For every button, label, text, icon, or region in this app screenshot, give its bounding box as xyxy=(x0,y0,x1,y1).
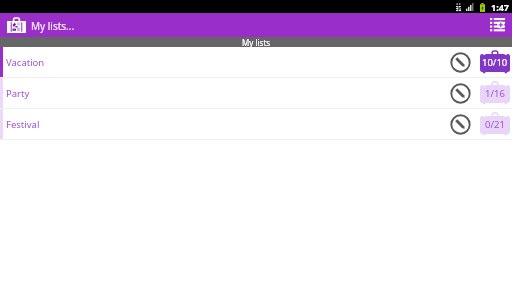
staticText: Vacation xyxy=(6,56,45,69)
button[interactable]: Festival xyxy=(0,109,512,139)
staticText: 1:47 xyxy=(491,1,509,13)
button[interactable]: Add list xyxy=(482,13,512,37)
staticText: Party xyxy=(6,87,30,100)
staticText: 0/21 xyxy=(485,118,505,131)
staticText: My lists xyxy=(242,37,271,47)
staticText: 1/16 xyxy=(485,87,505,100)
staticText: My lists... xyxy=(31,19,75,33)
button[interactable]: Vacation xyxy=(0,47,512,77)
button[interactable]: Party xyxy=(0,78,512,108)
button[interactable]: Editing disabled xyxy=(448,109,472,139)
staticText: Festival xyxy=(6,118,40,131)
staticText: 10/10 xyxy=(482,56,508,69)
button[interactable]: Editing disabled xyxy=(448,78,472,108)
button[interactable]: Editing disabled xyxy=(448,47,472,77)
